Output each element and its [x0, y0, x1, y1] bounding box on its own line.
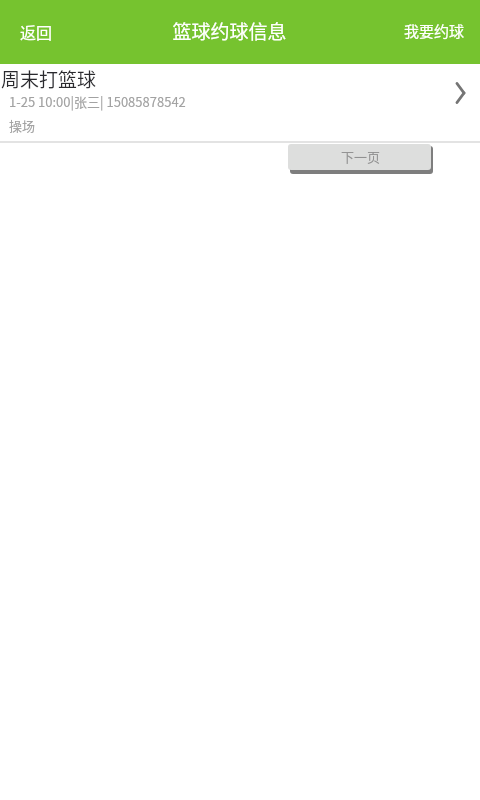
button[interactable]: 查看约球详情 [450, 81, 470, 105]
button[interactable]: 周末打篮球 [0, 64, 480, 142]
button[interactable]: 下一页 [288, 144, 431, 170]
staticText: 返回 [20, 20, 53, 43]
staticText: 操场 [9, 116, 36, 135]
staticText: 周末打篮球 [1, 65, 97, 93]
staticText: 篮球约球信息 [172, 17, 287, 45]
staticText: 下一页 [341, 147, 381, 166]
button[interactable]: 返回 [6, 8, 66, 56]
staticText: 我要约球 [404, 20, 465, 42]
button[interactable]: 我要约球 [390, 8, 478, 56]
staticText: 1-25 10:00|张三| 15085878542 [9, 92, 186, 111]
